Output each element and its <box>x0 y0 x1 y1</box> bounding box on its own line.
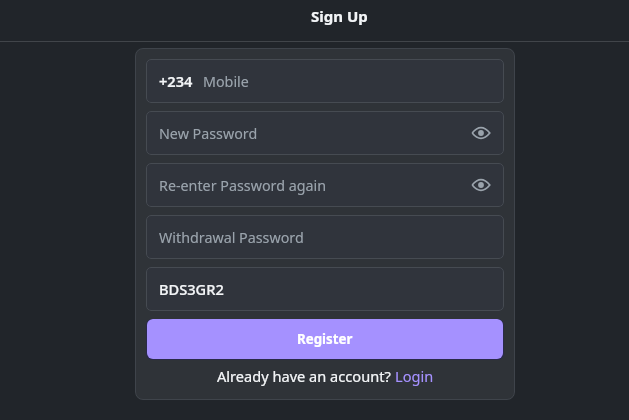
staticText: Re-enter Password again <box>159 176 327 195</box>
button[interactable]: Sign Up <box>311 6 368 26</box>
staticText: Mobile <box>203 72 249 91</box>
staticText: +234 <box>159 71 193 91</box>
button[interactable]: +234 <box>146 59 504 103</box>
staticText: Login <box>395 366 434 386</box>
button[interactable]: Show password <box>469 173 493 197</box>
staticText: Already have an account? <box>217 366 391 386</box>
staticText: Withdrawal Password <box>159 228 304 247</box>
button[interactable]: BDS3GR2 <box>146 267 504 311</box>
staticText: Sign Up <box>311 6 368 26</box>
button[interactable]: Withdrawal Password <box>146 215 504 259</box>
staticText: New Password <box>159 124 258 143</box>
button[interactable]: Re-enter Password again <box>146 163 504 207</box>
staticText: Register <box>297 330 353 348</box>
button[interactable]: New Password <box>146 111 504 155</box>
button[interactable]: Register <box>147 319 503 359</box>
button[interactable]: Show password <box>469 121 493 145</box>
button[interactable]: Login <box>395 366 434 386</box>
staticText: BDS3GR2 <box>159 279 224 299</box>
